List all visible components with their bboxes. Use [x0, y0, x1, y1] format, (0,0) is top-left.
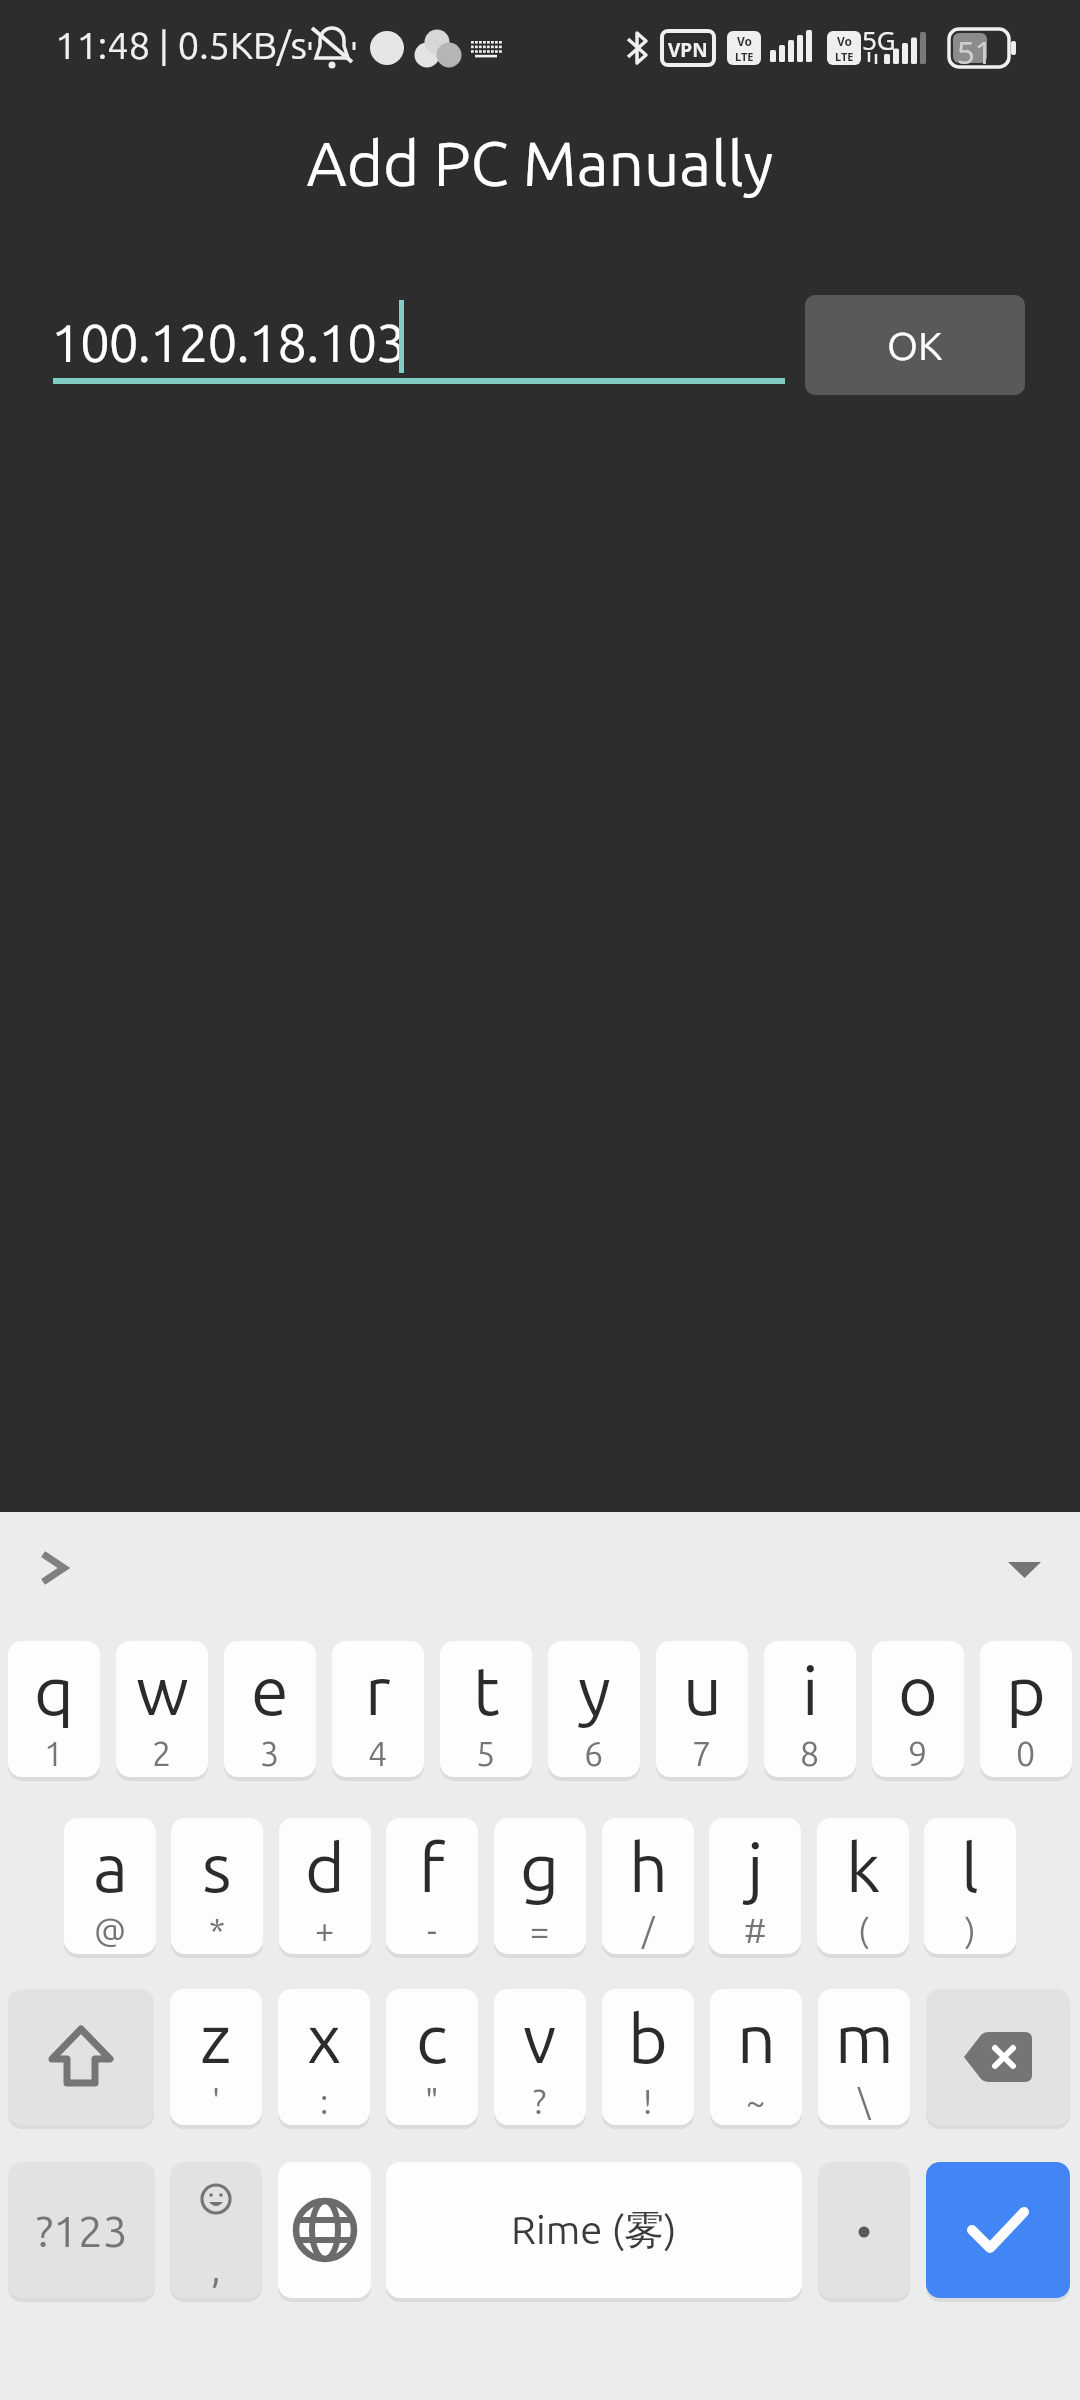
button[interactable]: z: [170, 1989, 262, 2125]
staticText: m: [835, 2000, 894, 2076]
staticText: g: [520, 1829, 560, 1905]
button[interactable]: v: [494, 1989, 586, 2125]
button[interactable]: c: [386, 1989, 478, 2125]
button[interactable]: s: [171, 1818, 263, 1954]
button[interactable]: [818, 2162, 910, 2298]
staticText: 7: [692, 1734, 712, 1772]
button[interactable]: g: [494, 1818, 586, 1954]
staticText: 11:48 | 0.5KB/s: [55, 24, 308, 67]
button[interactable]: [40, 285, 785, 390]
staticText: t: [473, 1652, 500, 1728]
staticText: !: [643, 2082, 653, 2120]
button[interactable]: d: [279, 1818, 371, 1954]
staticText: c: [416, 2000, 448, 2076]
staticText: #: [744, 1911, 767, 1949]
staticText: :: [320, 2082, 329, 2120]
staticText: LTE: [835, 49, 854, 64]
button[interactable]: [8, 1989, 154, 2125]
staticText: p: [1006, 1652, 1046, 1728]
staticText: k: [846, 1829, 881, 1905]
button[interactable]: [16, 1528, 96, 1608]
staticText: 6: [584, 1734, 604, 1772]
staticText: f: [419, 1829, 445, 1905]
staticText: +: [315, 1911, 335, 1949]
staticText: 5G: [862, 22, 896, 57]
staticText: 2: [152, 1734, 172, 1772]
button[interactable]: [170, 2162, 262, 2298]
staticText: s: [202, 1829, 232, 1905]
button[interactable]: u: [656, 1641, 748, 1777]
button[interactable]: x: [278, 1989, 370, 2125]
staticText: /: [642, 1911, 655, 1949]
button[interactable]: i: [764, 1641, 856, 1777]
staticText: o: [898, 1652, 938, 1728]
staticText: ': [212, 2082, 221, 2120]
button[interactable]: t: [440, 1641, 532, 1777]
staticText: 5: [476, 1734, 496, 1772]
staticText: 1: [44, 1734, 64, 1772]
staticText: -: [427, 1911, 437, 1949]
staticText: q: [34, 1652, 74, 1728]
staticText: 8: [800, 1734, 820, 1772]
button[interactable]: ?123: [8, 2162, 155, 2298]
staticText: VPN: [668, 37, 708, 63]
button[interactable]: f: [386, 1818, 478, 1954]
staticText: =: [530, 1911, 550, 1949]
staticText: ~: [746, 2082, 766, 2120]
staticText: h: [629, 1829, 668, 1905]
staticText: v: [523, 2000, 557, 2076]
staticText: 3: [260, 1734, 280, 1772]
button[interactable]: q: [8, 1641, 100, 1777]
button[interactable]: a: [64, 1818, 156, 1954]
staticText: u: [683, 1652, 722, 1728]
staticText: (: [858, 1911, 869, 1949]
staticText: y: [578, 1652, 611, 1728]
staticText: i: [802, 1652, 819, 1728]
button[interactable]: o: [872, 1641, 964, 1777]
staticText: w: [136, 1652, 189, 1728]
staticText: OK: [887, 323, 943, 368]
button[interactable]: k: [817, 1818, 909, 1954]
button[interactable]: j: [709, 1818, 801, 1954]
staticText: z: [200, 2000, 232, 2076]
button[interactable]: [984, 1528, 1064, 1608]
button[interactable]: [926, 2162, 1070, 2298]
staticText: 4: [368, 1734, 388, 1772]
button[interactable]: OK: [805, 295, 1025, 395]
staticText: ,: [211, 2245, 221, 2290]
button[interactable]: w: [116, 1641, 208, 1777]
staticText: ": [425, 2082, 439, 2120]
staticText: d: [305, 1829, 345, 1905]
staticText: ?123: [36, 2206, 128, 2255]
staticText: a: [93, 1829, 128, 1905]
button[interactable]: n: [710, 1989, 802, 2125]
staticText: ?: [533, 2082, 547, 2120]
staticText: *: [209, 1911, 226, 1949]
staticText: 9: [908, 1734, 928, 1772]
staticText: Rime (雾): [511, 2205, 677, 2255]
staticText: 0: [1016, 1734, 1036, 1772]
button[interactable]: [278, 2162, 371, 2298]
staticText: b: [628, 2000, 668, 2076]
button[interactable]: y: [548, 1641, 640, 1777]
staticText: \: [858, 2082, 871, 2120]
staticText: ): [965, 1911, 976, 1949]
button[interactable]: l: [924, 1818, 1016, 1954]
button[interactable]: [926, 1989, 1070, 2125]
button[interactable]: b: [602, 1989, 694, 2125]
staticText: Vo: [737, 33, 753, 49]
staticText: x: [307, 2000, 342, 2076]
staticText: n: [737, 2000, 776, 2076]
staticText: e: [251, 1652, 289, 1728]
button[interactable]: m: [818, 1989, 910, 2125]
button[interactable]: p: [980, 1641, 1072, 1777]
button[interactable]: Rime (雾): [386, 2162, 802, 2298]
button[interactable]: e: [224, 1641, 316, 1777]
staticText: l: [961, 1829, 979, 1905]
button[interactable]: h: [602, 1818, 694, 1954]
staticText: Add PC Manually: [0, 128, 1080, 198]
staticText: @: [94, 1911, 127, 1949]
staticText: j: [747, 1829, 764, 1905]
staticText: 100.120.18.103: [51, 313, 405, 372]
button[interactable]: r: [332, 1641, 424, 1777]
